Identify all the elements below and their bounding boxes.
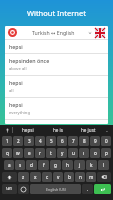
staticText: hepsi xyxy=(9,101,23,108)
staticText: 0 xyxy=(105,138,108,144)
button[interactable]: 1 xyxy=(2,136,12,146)
staticText: hepsi xyxy=(9,79,23,86)
button[interactable]: hepsi xyxy=(5,40,108,53)
staticText: English (US) xyxy=(46,187,66,192)
staticText: p xyxy=(105,150,108,156)
staticText: he just xyxy=(81,127,96,133)
button[interactable]: he just xyxy=(73,125,103,135)
staticText: ⌄ xyxy=(105,128,109,133)
staticText: 9 xyxy=(94,138,97,144)
button[interactable]: k xyxy=(86,160,97,170)
button[interactable]: Space xyxy=(30,184,81,194)
staticText: h xyxy=(66,162,69,168)
staticText: b xyxy=(68,174,71,180)
staticText: 1 xyxy=(6,138,9,144)
button[interactable]: 7 xyxy=(68,136,78,146)
button[interactable]: z xyxy=(18,172,29,182)
staticText: n xyxy=(79,174,82,180)
staticText: c xyxy=(46,174,49,180)
staticText: d xyxy=(30,162,33,168)
button[interactable]: h xyxy=(62,160,73,170)
button[interactable]: t xyxy=(46,148,56,158)
button[interactable]: Emoji xyxy=(18,184,29,194)
staticText: above all xyxy=(9,66,27,72)
button[interactable]: 9 xyxy=(90,136,100,146)
button[interactable]: hepsi xyxy=(5,76,108,97)
button[interactable]: hepsi xyxy=(5,98,108,119)
staticText: v xyxy=(57,174,60,180)
button[interactable]: f xyxy=(38,160,49,170)
button[interactable]: 5 xyxy=(46,136,56,146)
button[interactable]: Backspace xyxy=(97,172,111,182)
staticText: k xyxy=(90,162,93,168)
button[interactable]: b xyxy=(64,172,74,182)
staticText: q xyxy=(6,150,9,156)
staticText: 6 xyxy=(61,138,64,144)
button[interactable]: y xyxy=(57,148,67,158)
button[interactable]: e xyxy=(24,148,34,158)
staticText: hepsinden önce xyxy=(9,57,50,64)
button[interactable]: Target language English xyxy=(95,28,105,38)
button[interactable]: Expand languages xyxy=(86,29,93,36)
staticText: Without Internet xyxy=(27,8,86,18)
staticText: everything xyxy=(9,110,30,116)
staticText: f xyxy=(43,162,45,168)
button[interactable]: ı xyxy=(79,148,89,158)
button[interactable]: he is xyxy=(43,125,73,135)
button[interactable]: hepsinden önce xyxy=(5,54,108,75)
button[interactable]: 4 xyxy=(35,136,45,146)
button[interactable]: c xyxy=(42,172,52,182)
staticText: u xyxy=(72,150,75,156)
staticText: m xyxy=(89,174,94,180)
button[interactable]: Enter xyxy=(94,184,111,194)
button[interactable]: a xyxy=(4,160,14,170)
staticText: . xyxy=(87,186,89,192)
button[interactable]: d xyxy=(26,160,37,170)
staticText: j xyxy=(79,162,81,168)
staticText: he is xyxy=(53,127,64,133)
button[interactable]: Shift xyxy=(2,172,17,182)
staticText: ı xyxy=(83,150,85,156)
button[interactable]: s xyxy=(15,160,25,170)
staticText: l xyxy=(103,162,105,168)
button[interactable]: x xyxy=(30,172,41,182)
staticText: z xyxy=(22,174,25,180)
button[interactable]: 2 xyxy=(13,136,23,146)
staticText: o xyxy=(94,150,97,156)
staticText: 2 xyxy=(17,138,20,144)
button[interactable]: w xyxy=(13,148,23,158)
button[interactable]: Source language xyxy=(8,28,17,37)
button[interactable]: m xyxy=(86,172,96,182)
button[interactable]: !#1 xyxy=(2,184,17,194)
staticText: 5 xyxy=(50,138,53,144)
staticText: hepsi xyxy=(22,127,34,133)
button[interactable]: q xyxy=(2,148,12,158)
button[interactable]: v xyxy=(53,172,63,182)
staticText: !#1 xyxy=(6,186,13,192)
button[interactable]: 8 xyxy=(79,136,89,146)
button[interactable]: r xyxy=(35,148,45,158)
button[interactable]: 3 xyxy=(24,136,34,146)
staticText: 7 xyxy=(72,138,75,144)
button[interactable]: 6 xyxy=(57,136,67,146)
staticText: t xyxy=(50,150,52,156)
button[interactable]: n xyxy=(75,172,85,182)
staticText: Turkish ↔ English xyxy=(32,29,75,36)
button[interactable]: j xyxy=(74,160,85,170)
staticText: s xyxy=(19,162,22,168)
button[interactable]: g xyxy=(50,160,61,170)
button[interactable]: More suggestions xyxy=(103,125,110,135)
button[interactable]: p xyxy=(101,148,111,158)
staticText: g xyxy=(54,162,57,168)
staticText: y xyxy=(61,150,64,156)
button[interactable]: 0 xyxy=(101,136,111,146)
button[interactable]: hepsi xyxy=(13,125,43,135)
button[interactable]: . xyxy=(82,184,93,194)
button[interactable]: Voice input xyxy=(3,126,11,134)
button[interactable]: o xyxy=(90,148,100,158)
button[interactable]: l xyxy=(98,160,109,170)
button[interactable]: Turkish ↔ English xyxy=(20,26,86,39)
staticText: e xyxy=(28,150,31,156)
button[interactable]: u xyxy=(68,148,78,158)
staticText: w xyxy=(16,150,20,156)
